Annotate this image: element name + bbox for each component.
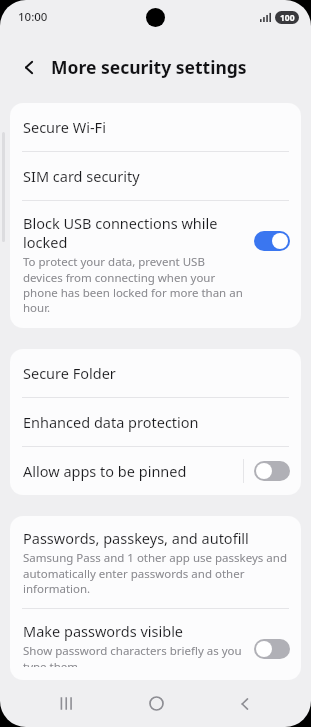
button[interactable]: Toggle on xyxy=(254,231,290,251)
button[interactable]: Back xyxy=(221,680,269,727)
button[interactable]: Allow apps to be pinned xyxy=(10,447,301,495)
staticText: Show password characters briefly as you … xyxy=(23,643,246,667)
staticText: Secure Wi-Fi xyxy=(23,117,106,137)
staticText: 100 xyxy=(280,12,295,24)
button[interactable]: Toggle off xyxy=(254,639,290,659)
staticText: 10:00 xyxy=(18,9,48,25)
staticText: Make passwords visible xyxy=(23,621,184,641)
staticText: Enhanced data protection xyxy=(23,412,199,432)
staticText: Block USB connections while locked xyxy=(23,213,246,252)
button[interactable]: Toggle off xyxy=(254,461,290,481)
button[interactable]: Recents xyxy=(42,680,90,727)
staticText: Passwords, passkeys, and autofill xyxy=(23,528,249,548)
staticText: To protect your data, prevent USB device… xyxy=(23,254,246,315)
button[interactable]: Home xyxy=(132,680,180,727)
staticText: Secure Folder xyxy=(23,363,116,383)
button[interactable]: Enhanced data protection xyxy=(10,398,301,446)
button[interactable]: Make passwords visible xyxy=(10,609,301,680)
button[interactable]: Back xyxy=(10,48,48,86)
button[interactable]: Passwords, passkeys, and autofill xyxy=(10,516,301,608)
staticText: More security settings xyxy=(51,55,247,79)
button[interactable]: SIM card security xyxy=(10,152,301,200)
staticText: Samsung Pass and 1 other app use passkey… xyxy=(23,550,288,596)
staticText: Allow apps to be pinned xyxy=(23,461,243,481)
button[interactable]: Secure Wi-Fi xyxy=(10,103,301,151)
staticText: SIM card security xyxy=(23,166,140,186)
button[interactable]: Secure Folder xyxy=(10,349,301,397)
button[interactable]: Block USB connections while locked xyxy=(10,201,301,328)
